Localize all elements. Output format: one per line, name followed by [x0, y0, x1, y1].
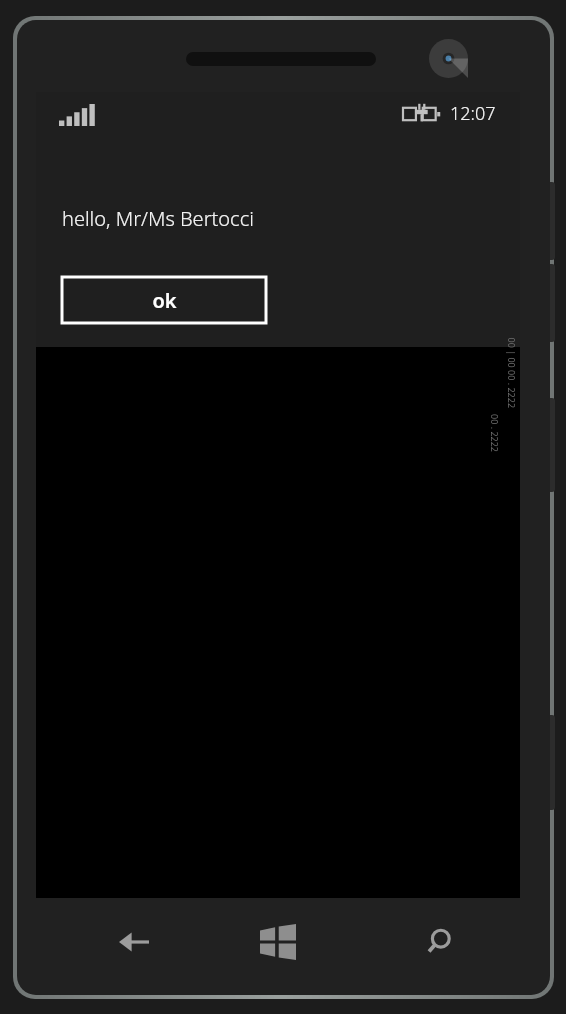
- staticText: hello, Mr/Ms Bertocci: [62, 205, 254, 232]
- staticText: 00 | 00 00 . 2222: [505, 337, 517, 408]
- staticText: 12:07: [450, 101, 496, 126]
- button[interactable]: ok: [62, 277, 266, 323]
- button[interactable]: Search: [378, 898, 498, 986]
- staticText: ok: [152, 287, 177, 314]
- button[interactable]: Back: [74, 898, 194, 986]
- staticText: 00 . 2222: [489, 414, 501, 452]
- button[interactable]: Start: [218, 898, 338, 986]
